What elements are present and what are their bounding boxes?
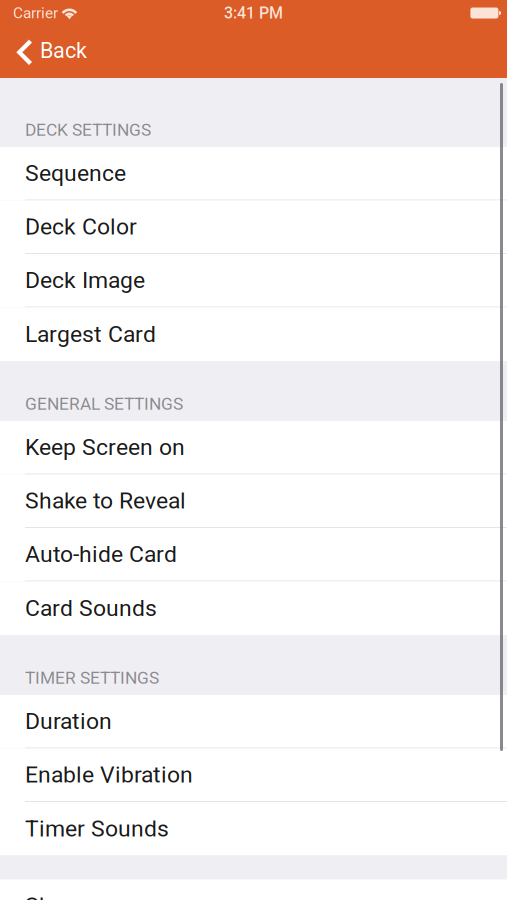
staticText: Largest Card	[25, 321, 156, 348]
staticText: Auto-hide Card	[25, 541, 177, 568]
staticText: Duration	[25, 708, 112, 735]
staticText: Keep Screen on	[25, 434, 185, 461]
button[interactable]: Largest Card	[0, 307, 507, 361]
button[interactable]: Shake to Reveal	[0, 474, 507, 528]
staticText: 3:41 PM	[224, 4, 283, 22]
button[interactable]: Keep Screen on	[0, 421, 507, 474]
button[interactable]: Enable Vibration	[0, 748, 507, 802]
staticText: Deck Image	[25, 267, 145, 294]
button[interactable]: Timer Sounds	[0, 802, 507, 855]
staticText: Enable Vibration	[25, 761, 193, 788]
button[interactable]: Share	[0, 879, 507, 900]
button[interactable]: Auto-hide Card	[0, 528, 507, 581]
staticText: Timer Sounds	[25, 815, 169, 842]
staticText: Sequence	[25, 160, 126, 187]
staticText: Share	[25, 892, 84, 900]
button[interactable]: Deck Color	[0, 200, 507, 254]
staticText: DECK SETTINGS	[25, 120, 151, 140]
button[interactable]: Back	[0, 26, 507, 78]
staticText: GENERAL SETTINGS	[25, 394, 183, 414]
button[interactable]: Duration	[0, 695, 507, 748]
staticText: Back	[40, 38, 87, 63]
staticText: Shake to Reveal	[25, 487, 186, 514]
button[interactable]: Deck Image	[0, 254, 507, 307]
button[interactable]: Sequence	[0, 147, 507, 200]
staticText: Carrier	[13, 4, 58, 22]
button[interactable]: Card Sounds	[0, 581, 507, 635]
staticText: Card Sounds	[25, 595, 157, 622]
staticText: Deck Color	[25, 213, 137, 240]
staticText: TIMER SETTINGS	[25, 668, 159, 688]
